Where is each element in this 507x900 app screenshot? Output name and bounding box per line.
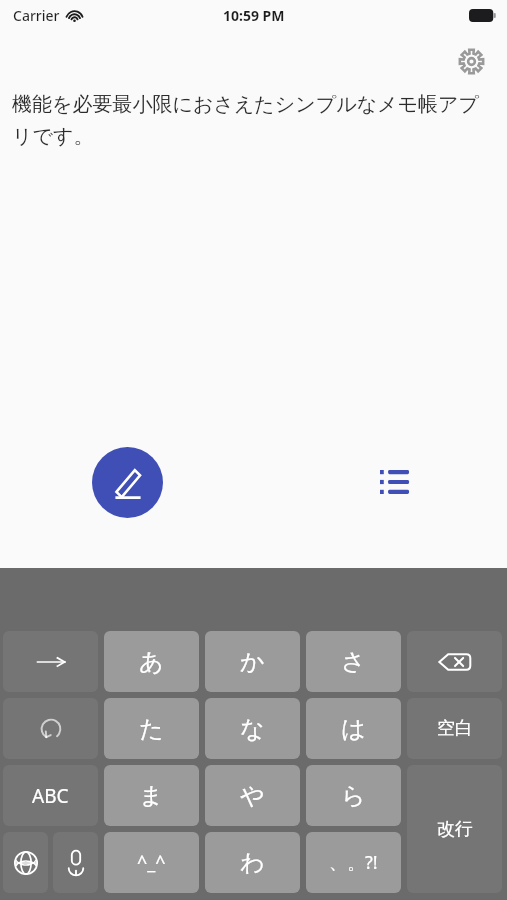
button[interactable]: ま bbox=[104, 765, 199, 826]
button[interactable]: な bbox=[205, 698, 300, 759]
button[interactable]: Note list bbox=[371, 459, 417, 505]
button[interactable]: New note bbox=[92, 447, 163, 518]
staticText: 改行 bbox=[437, 818, 473, 841]
button[interactable]: や bbox=[205, 765, 300, 826]
staticText: た bbox=[139, 714, 164, 744]
button[interactable]: Settings bbox=[449, 39, 493, 83]
staticText: ま bbox=[139, 781, 164, 811]
staticText: は bbox=[341, 714, 366, 744]
button[interactable]: 改行 bbox=[407, 765, 502, 893]
button[interactable]: 、。?! bbox=[306, 832, 401, 893]
staticText: や bbox=[240, 781, 265, 811]
staticText: ^_^ bbox=[137, 850, 166, 875]
button[interactable]: Delete bbox=[407, 631, 502, 692]
staticText: 機能を必要最小限におさえたシンプルなメモ帳アプリです。 bbox=[12, 92, 495, 149]
button[interactable]: た bbox=[104, 698, 199, 759]
staticText: わ bbox=[240, 848, 265, 878]
button[interactable]: あ bbox=[104, 631, 199, 692]
staticText: か bbox=[240, 647, 265, 677]
button[interactable]: は bbox=[306, 698, 401, 759]
button[interactable]: か bbox=[205, 631, 300, 692]
staticText: 10:59 PM bbox=[223, 6, 285, 25]
staticText: さ bbox=[341, 647, 366, 677]
button[interactable]: Voice input bbox=[53, 832, 98, 893]
button[interactable]: 空白 bbox=[407, 698, 502, 759]
staticText: Carrier bbox=[13, 6, 60, 25]
button[interactable]: ^_^ bbox=[104, 832, 199, 893]
button[interactable]: Next candidate bbox=[3, 631, 98, 692]
staticText: 空白 bbox=[437, 717, 473, 740]
button[interactable]: Undo bbox=[3, 698, 98, 759]
staticText: あ bbox=[139, 647, 164, 677]
staticText: ら bbox=[341, 781, 366, 811]
button[interactable]: わ bbox=[205, 832, 300, 893]
staticText: な bbox=[240, 714, 265, 744]
staticText: 、。?! bbox=[329, 850, 378, 875]
button[interactable]: Switch keyboard bbox=[3, 832, 48, 893]
staticText: ABC bbox=[32, 783, 69, 809]
button[interactable]: ABC bbox=[3, 765, 98, 826]
button[interactable]: さ bbox=[306, 631, 401, 692]
button[interactable]: ら bbox=[306, 765, 401, 826]
